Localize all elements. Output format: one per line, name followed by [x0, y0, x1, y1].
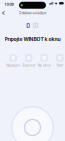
button[interactable]: Start	[52, 54, 65, 67]
staticText: Odebrat ovládání	[18, 11, 46, 15]
staticText: Připojte WINBOT k oknu	[4, 36, 60, 42]
staticText: Zapnout	[22, 63, 35, 67]
button[interactable]: Back	[0, 9, 8, 17]
button[interactable]: Napájení	[5, 54, 21, 67]
staticText: Napájení	[6, 63, 20, 67]
staticText: Na okno	[38, 63, 51, 67]
button[interactable]: Zapnout	[21, 54, 36, 67]
staticText: 10:08	[4, 2, 13, 7]
staticText: Start	[56, 63, 63, 67]
button[interactable]: Na okno	[36, 54, 52, 67]
